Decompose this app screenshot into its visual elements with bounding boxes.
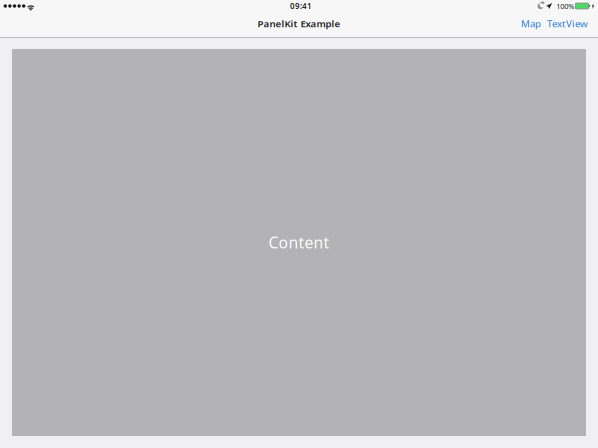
staticText: 100% — [556, 1, 574, 11]
button[interactable]: TextView — [544, 13, 591, 34]
button[interactable]: Map — [518, 13, 544, 34]
staticText: 09:41 — [290, 1, 312, 11]
staticText: Map — [521, 17, 541, 30]
staticText: Content — [268, 232, 329, 253]
staticText: PanelKit Example — [257, 17, 340, 30]
staticText: TextView — [547, 17, 588, 30]
